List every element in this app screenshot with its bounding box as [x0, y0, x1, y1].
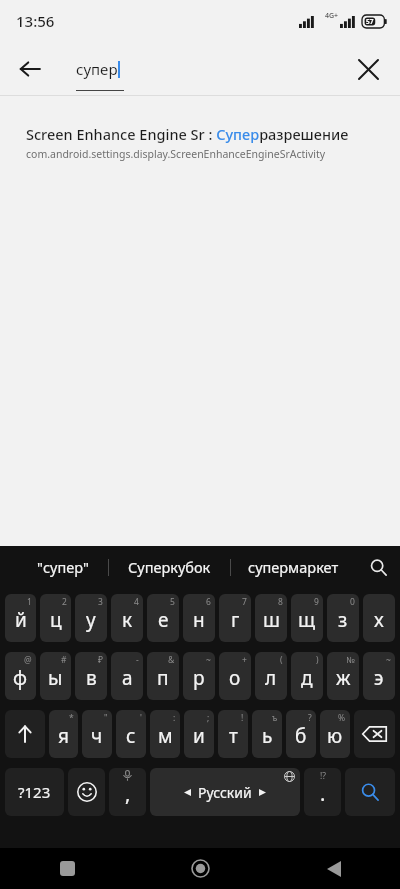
- button[interactable]: щ: [291, 594, 323, 642]
- staticText: э: [374, 665, 384, 691]
- button[interactable]: а: [111, 652, 143, 700]
- button[interactable]: д: [291, 652, 323, 700]
- staticText: &: [168, 654, 175, 666]
- staticText: супермаркет: [248, 557, 339, 577]
- staticText: ь: [262, 723, 273, 749]
- button[interactable]: ш: [255, 594, 287, 642]
- staticText: я: [58, 723, 69, 749]
- button[interactable]: Screen Enhance Engine Sr : Суперразрешен…: [0, 124, 400, 161]
- staticText: -: [136, 654, 139, 666]
- button[interactable]: н: [183, 594, 215, 642]
- button[interactable]: ь: [252, 710, 282, 758]
- button[interactable]: р: [183, 652, 215, 700]
- staticText: ,: [125, 780, 131, 807]
- staticText: @: [24, 654, 32, 666]
- staticText: ю: [327, 723, 343, 749]
- button[interactable]: ч: [82, 710, 112, 758]
- staticText: +: [242, 654, 247, 666]
- button[interactable]: "супер": [18, 546, 108, 588]
- button[interactable]: Search suggestions: [356, 546, 400, 588]
- button[interactable]: ж: [327, 652, 359, 700]
- button[interactable]: и: [184, 710, 214, 758]
- button[interactable]: м: [150, 710, 180, 758]
- button[interactable]: в: [75, 652, 107, 700]
- staticText: супер: [76, 59, 118, 79]
- button[interactable]: Space, Russian layout: [150, 768, 300, 816]
- button[interactable]: я: [49, 710, 78, 758]
- button[interactable]: Home: [134, 848, 267, 889]
- staticText: ~: [206, 654, 211, 666]
- staticText: (: [280, 654, 283, 666]
- staticText: Screen Enhance Engine Sr : Суперразрешен…: [26, 124, 349, 144]
- button[interactable]: Backspace: [354, 710, 395, 758]
- staticText: 7: [242, 596, 247, 608]
- staticText: %: [338, 712, 346, 724]
- button[interactable]: Суперкубок: [109, 546, 230, 588]
- staticText: и: [193, 723, 205, 749]
- button[interactable]: с: [116, 710, 146, 758]
- button[interactable]: б: [286, 710, 316, 758]
- staticText: 4: [134, 596, 139, 608]
- staticText: !?: [320, 770, 326, 782]
- staticText: а: [122, 665, 133, 691]
- button[interactable]: Clear search: [346, 47, 390, 91]
- staticText: л: [265, 665, 277, 691]
- staticText: !: [241, 712, 244, 724]
- button[interactable]: й: [5, 594, 36, 642]
- button[interactable]: е: [147, 594, 179, 642]
- staticText: ?123: [18, 782, 51, 802]
- staticText: у: [86, 607, 96, 633]
- button[interactable]: х: [363, 594, 395, 642]
- button[interactable]: ц: [40, 594, 71, 642]
- staticText: ч: [91, 723, 103, 749]
- button[interactable]: п: [147, 652, 179, 700]
- button[interactable]: супермаркет: [231, 546, 356, 588]
- button[interactable]: ф: [5, 652, 36, 700]
- button[interactable]: ы: [40, 652, 71, 700]
- staticText: 13:56: [16, 11, 55, 31]
- button[interactable]: ?123: [5, 768, 64, 816]
- button[interactable]: к: [111, 594, 143, 642]
- button[interactable]: Back: [8, 47, 52, 91]
- button[interactable]: ю: [320, 710, 350, 758]
- staticText: к: [122, 607, 133, 633]
- staticText: х: [374, 607, 384, 633]
- staticText: в: [86, 665, 97, 691]
- button[interactable]: супер: [76, 59, 136, 79]
- staticText: 2: [62, 596, 67, 608]
- staticText: ж: [336, 665, 351, 691]
- staticText: 6: [206, 596, 211, 608]
- button[interactable]: Period: [304, 768, 341, 816]
- staticText: ц: [50, 607, 62, 633]
- button[interactable]: о: [219, 652, 251, 700]
- staticText: *: [69, 712, 74, 724]
- button[interactable]: Back: [267, 848, 400, 889]
- staticText: 4G+: [325, 11, 339, 21]
- button[interactable]: г: [219, 594, 251, 642]
- button[interactable]: э: [363, 652, 395, 700]
- button[interactable]: т: [218, 710, 248, 758]
- button[interactable]: Search: [345, 768, 395, 816]
- button[interactable]: з: [327, 594, 359, 642]
- staticText: ): [316, 654, 319, 666]
- staticText: 8: [278, 596, 283, 608]
- staticText: т: [229, 723, 238, 749]
- button[interactable]: у: [75, 594, 107, 642]
- staticText: ': [140, 712, 142, 724]
- button[interactable]: Comma, voice input: [109, 768, 146, 816]
- staticText: ": [104, 712, 108, 724]
- button[interactable]: л: [255, 652, 287, 700]
- staticText: 3: [98, 596, 103, 608]
- button[interactable]: Recent apps: [0, 848, 134, 889]
- button[interactable]: Shift: [5, 710, 45, 758]
- staticText: 57: [366, 17, 374, 26]
- staticText: :: [173, 712, 176, 724]
- staticText: ш: [263, 607, 280, 633]
- staticText: 0: [350, 596, 355, 608]
- staticText: 1: [27, 596, 32, 608]
- staticText: с: [126, 723, 136, 749]
- button[interactable]: Emoji: [68, 768, 105, 816]
- staticText: 9: [314, 596, 319, 608]
- staticText: .: [320, 780, 326, 807]
- staticText: Русский: [198, 783, 252, 802]
